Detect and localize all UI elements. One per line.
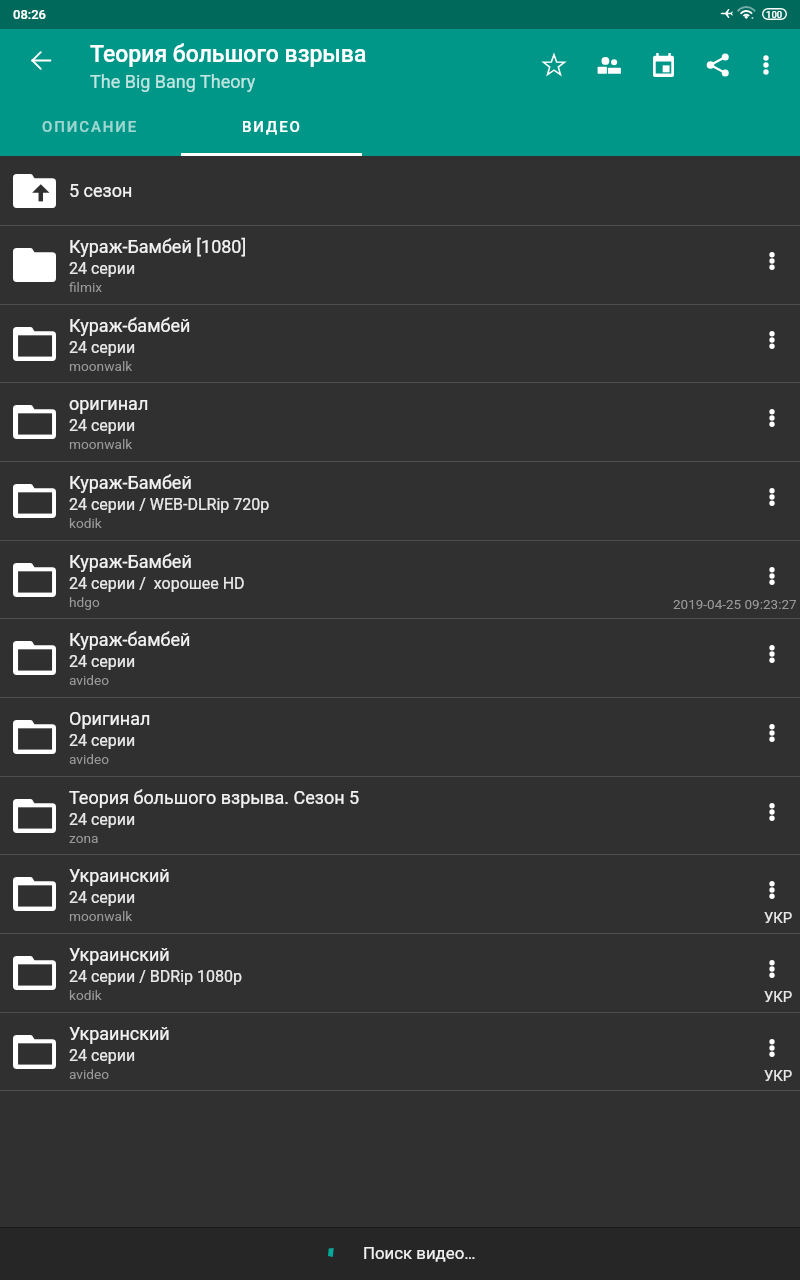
staticText: 5 сезон — [69, 180, 133, 201]
staticText: ОПИСАНИЕ — [42, 118, 139, 136]
staticText: Кураж-Бамбей — [69, 551, 192, 572]
staticText: 100 — [766, 9, 783, 20]
staticText: moonwalk — [69, 908, 133, 924]
button[interactable]: Back — [17, 36, 65, 84]
button[interactable]: Оригинал — [0, 698, 800, 776]
button[interactable]: More options — [742, 41, 790, 89]
staticText: moonwalk — [69, 436, 133, 452]
button[interactable]: More options — [758, 958, 786, 980]
button[interactable]: Украинский — [0, 934, 800, 1012]
button[interactable]: More options — [758, 722, 786, 744]
button[interactable]: More options — [758, 643, 786, 665]
button[interactable]: Кураж-бамбей — [0, 305, 800, 382]
button[interactable]: ВИДЕО — [181, 101, 362, 156]
staticText: 24 серии / BDRip 1080p — [69, 967, 242, 986]
button[interactable]: Кураж-бамбей — [0, 619, 800, 697]
button[interactable]: Favorite — [530, 41, 578, 89]
staticText: avideo — [69, 672, 110, 688]
button[interactable]: More options — [758, 565, 786, 587]
staticText: Поиск видео… — [363, 1243, 476, 1263]
button[interactable]: Calendar — [639, 41, 687, 89]
button[interactable]: 5 сезон — [0, 156, 800, 225]
button[interactable]: More options — [758, 407, 786, 429]
staticText: 24 серии — [69, 338, 136, 357]
button[interactable]: More options — [758, 486, 786, 508]
staticText: Оригинал — [69, 708, 151, 729]
staticText: 2019-04-25 09:23:27 — [673, 596, 797, 612]
staticText: 24 серии / хорошее HD — [69, 574, 245, 593]
staticText: avideo — [69, 751, 110, 767]
button[interactable]: More options — [758, 250, 786, 272]
button[interactable]: More options — [758, 801, 786, 823]
staticText: 24 серии — [69, 888, 136, 907]
staticText: Кураж-бамбей — [69, 629, 191, 650]
staticText: Теория большого взрыва. Сезон 5 — [69, 787, 360, 808]
button[interactable]: Украинский — [0, 1013, 800, 1090]
button[interactable]: Кураж-Бамбей — [0, 541, 800, 618]
button[interactable]: Кураж-Бамбей [1080] — [0, 226, 800, 304]
button[interactable]: Group watch — [585, 41, 633, 89]
button[interactable]: More options — [758, 1037, 786, 1059]
staticText: Кураж-Бамбей — [69, 472, 192, 493]
staticText: ВИДЕО — [242, 118, 302, 136]
staticText: Украинский — [69, 1023, 170, 1044]
staticText: filmix — [69, 279, 103, 295]
staticText: Украинский — [69, 865, 170, 886]
staticText: 08:26 — [13, 7, 46, 22]
staticText: 24 серии — [69, 810, 136, 829]
button[interactable]: More options — [758, 329, 786, 351]
staticText: moonwalk — [69, 358, 133, 374]
staticText: Украинский — [69, 944, 170, 965]
staticText: Теория большого взрыва — [90, 41, 367, 68]
button[interactable]: More options — [758, 879, 786, 901]
staticText: оригинал — [69, 393, 149, 414]
staticText: The Big Bang Theory — [90, 71, 256, 92]
staticText: 24 серии — [69, 259, 136, 278]
staticText: 24 серии — [69, 416, 136, 435]
button[interactable]: ОПИСАНИЕ — [0, 101, 181, 156]
staticText: УКР — [764, 909, 793, 926]
staticText: Кураж-бамбей — [69, 315, 191, 336]
button[interactable]: оригинал — [0, 383, 800, 461]
staticText: hdgo — [69, 594, 100, 610]
staticText: zona — [69, 830, 99, 846]
button[interactable]: Кураж-Бамбей — [0, 462, 800, 540]
staticText: 24 серии — [69, 731, 136, 750]
staticText: kodik — [69, 515, 102, 531]
staticText: 24 серии — [69, 652, 136, 671]
staticText: УКР — [764, 988, 793, 1005]
staticText: kodik — [69, 987, 102, 1003]
staticText: avideo — [69, 1066, 110, 1082]
button[interactable]: Теория большого взрыва. Сезон 5 — [0, 777, 800, 854]
staticText: Кураж-Бамбей [1080] — [69, 236, 247, 257]
button[interactable]: Share — [694, 41, 742, 89]
button[interactable]: Украинский — [0, 855, 800, 933]
staticText: УКР — [764, 1067, 793, 1084]
staticText: 24 серии — [69, 1046, 136, 1065]
staticText: 24 серии / WEB-DLRip 720p — [69, 495, 270, 514]
button[interactable]: Поиск видео… — [0, 1227, 800, 1280]
